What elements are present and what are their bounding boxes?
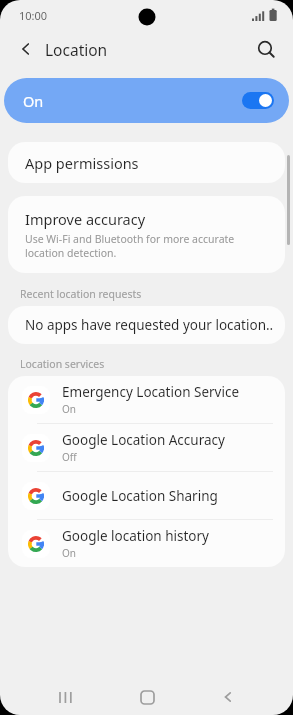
button[interactable]: Back xyxy=(211,680,245,714)
staticText: No apps have requested your location.. xyxy=(25,316,274,334)
button[interactable]: No apps have requested your location.. xyxy=(8,306,285,344)
staticText: Google Location Sharing xyxy=(62,487,218,505)
button[interactable]: App permissions xyxy=(8,142,285,183)
staticText: Emergency Location Service xyxy=(62,383,240,401)
staticText: On xyxy=(62,402,76,416)
button[interactable]: Google location history xyxy=(8,520,285,567)
button[interactable]: Google Location Accuracy xyxy=(8,424,285,471)
staticText: On xyxy=(62,546,76,560)
staticText: Improve accuracy xyxy=(25,209,146,229)
staticText: On xyxy=(23,91,44,111)
button[interactable]: Home xyxy=(130,680,164,714)
button[interactable]: On xyxy=(4,78,289,123)
staticText: Recent location requests xyxy=(20,287,142,301)
staticText: 10:00 xyxy=(19,8,48,23)
button[interactable]: Search xyxy=(248,31,284,67)
button[interactable]: Emergency Location Service xyxy=(8,376,285,423)
staticText: Use Wi-Fi and Bluetooth for more accurat… xyxy=(25,232,271,260)
staticText: Off xyxy=(62,450,77,464)
button[interactable]: Back xyxy=(8,31,44,67)
staticText: Google location history xyxy=(62,527,209,545)
button[interactable]: Recent apps xyxy=(48,680,82,714)
staticText: Google Location Accuracy xyxy=(62,431,225,449)
staticText: Location xyxy=(45,39,108,60)
button[interactable]: Improve accuracy xyxy=(8,196,285,273)
button[interactable]: Google Location Sharing xyxy=(8,472,285,519)
staticText: Location services xyxy=(20,357,105,371)
staticText: App permissions xyxy=(25,153,139,173)
